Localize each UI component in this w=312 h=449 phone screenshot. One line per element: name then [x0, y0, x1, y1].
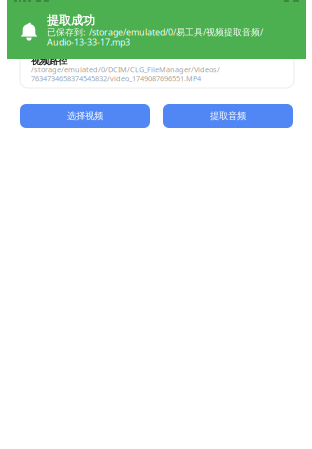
staticText: Audio-13-33-17.mp3 — [47, 36, 130, 48]
button[interactable]: 选择视频 — [20, 104, 150, 128]
button[interactable]: 提取音频 — [163, 104, 293, 128]
staticText: 7634734658374545832/video_1749087696551.… — [31, 73, 201, 83]
staticText: /storage/emulated/0/DCIM/CLG_FileManager… — [31, 64, 220, 74]
staticText: 提取成功 — [47, 13, 95, 28]
staticText: 提取音频 — [210, 110, 246, 122]
staticText: 选择视频 — [67, 110, 103, 122]
staticText: 视频路径 — [31, 55, 67, 67]
staticText: 已保存到: /storage/emulated/0/易工具/视频提取音频/ — [47, 26, 263, 38]
